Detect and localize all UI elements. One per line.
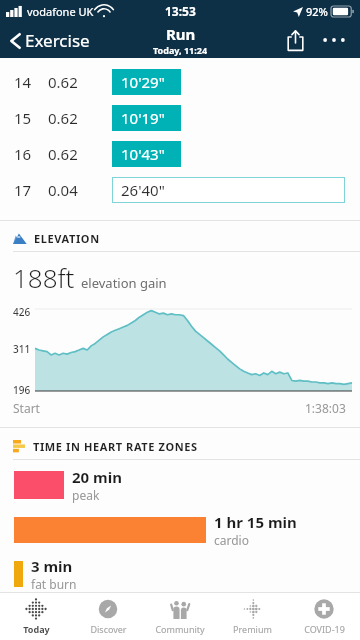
button[interactable]: Share <box>278 23 312 57</box>
staticText: 188ft <box>13 260 75 295</box>
button[interactable]: 14 <box>0 64 360 100</box>
staticText: COVID-19 <box>304 623 345 635</box>
staticText: elevation gain <box>81 274 167 292</box>
staticText: Discover <box>90 623 127 635</box>
staticText: 10'43" <box>121 144 165 164</box>
staticText: 17 <box>14 180 48 200</box>
staticText: vodafone UK <box>27 4 94 19</box>
staticText: 13:53 <box>165 3 196 19</box>
staticText: TIME IN HEART RATE ZONES <box>33 439 198 454</box>
staticText: 10'29" <box>121 72 165 92</box>
button[interactable]: Today <box>0 593 72 640</box>
button[interactable]: COVID-19 <box>288 593 360 640</box>
staticText: 196 <box>13 383 31 397</box>
staticText: 1 hr 15 min <box>214 512 297 532</box>
staticText: 3 min <box>31 556 73 576</box>
staticText: 0.04 <box>48 180 112 200</box>
staticText: Premium <box>233 623 272 635</box>
staticText: 0.62 <box>48 108 112 128</box>
staticText: Today <box>23 623 50 635</box>
button[interactable]: 15 <box>0 100 360 136</box>
staticText: 15 <box>14 108 48 128</box>
staticText: 0.62 <box>48 144 112 164</box>
button[interactable]: 16 <box>0 136 360 172</box>
button[interactable]: 17 <box>0 172 360 208</box>
button[interactable]: Community <box>144 593 216 640</box>
staticText: 92% <box>306 4 328 19</box>
staticText: cardio <box>214 532 249 548</box>
staticText: ELEVATION <box>34 231 100 246</box>
button[interactable]: Discover <box>72 593 144 640</box>
button[interactable]: Premium <box>216 593 288 640</box>
staticText: Exercise <box>25 29 90 52</box>
staticText: 426 <box>13 305 31 319</box>
staticText: Today, 11:24 <box>153 44 208 56</box>
button[interactable]: 3 min <box>0 556 360 592</box>
staticText: 1:38:03 <box>305 400 346 416</box>
button[interactable]: 20 min <box>0 467 360 503</box>
button[interactable]: Exercise <box>7 25 92 56</box>
staticText: 311 <box>13 342 31 356</box>
staticText: 0.62 <box>48 72 112 92</box>
staticText: fat burn <box>31 576 77 592</box>
staticText: 10'19" <box>121 108 165 128</box>
staticText: Community <box>155 623 205 635</box>
staticText: 14 <box>14 72 48 92</box>
button[interactable]: 1 hr 15 min <box>0 512 360 548</box>
staticText: Start <box>13 400 40 416</box>
button[interactable]: More options <box>316 22 352 58</box>
staticText: 26'40" <box>121 180 165 200</box>
staticText: peak <box>72 487 100 503</box>
staticText: Run <box>166 24 196 44</box>
staticText: 20 min <box>72 467 122 487</box>
staticText: 16 <box>14 144 48 164</box>
